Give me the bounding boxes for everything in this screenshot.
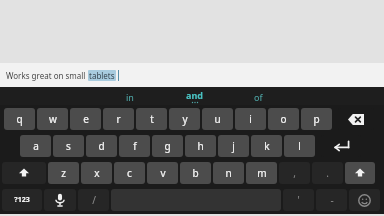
staticText: u [214, 112, 221, 126]
staticText: . [326, 166, 329, 180]
button[interactable]: a [20, 135, 51, 157]
button[interactable]: f [119, 135, 150, 157]
staticText: ?123 [14, 195, 30, 205]
staticText: / [92, 193, 96, 207]
button[interactable]: n [213, 162, 244, 184]
staticText: q [16, 112, 23, 126]
staticText: r [116, 112, 121, 126]
staticText: and [186, 89, 203, 101]
button[interactable]: l [284, 135, 315, 157]
button[interactable]: Backspace [338, 108, 374, 130]
button[interactable]: x [81, 162, 112, 184]
button[interactable]: t [136, 108, 167, 130]
staticText: k [264, 139, 270, 153]
staticText: e [83, 112, 89, 126]
button[interactable]: o [268, 108, 299, 130]
button[interactable]: h [185, 135, 216, 157]
staticText: i [249, 112, 252, 126]
button[interactable]: z [48, 162, 79, 184]
button[interactable]: j [218, 135, 249, 157]
button[interactable]: - [316, 189, 347, 211]
button[interactable]: k [251, 135, 282, 157]
button[interactable]: u [202, 108, 233, 130]
button[interactable]: of [226, 88, 290, 105]
staticText: s [66, 139, 71, 153]
staticText: in [126, 91, 134, 103]
staticText: y [182, 112, 188, 126]
staticText: ' [297, 193, 300, 207]
button[interactable]: b [180, 162, 211, 184]
button[interactable]: r [103, 108, 134, 130]
staticText: Works great on small [6, 70, 88, 81]
button[interactable]: ' [283, 189, 314, 211]
button[interactable]: Works great on small [0, 63, 384, 87]
staticText: z [61, 166, 66, 180]
button[interactable]: q [4, 108, 35, 130]
button[interactable]: Enter [321, 135, 361, 157]
button[interactable]: s [53, 135, 84, 157]
button[interactable]: Voice input [44, 189, 76, 211]
staticText: of [254, 91, 263, 103]
button[interactable]: ?123 [2, 189, 42, 211]
staticText: l [298, 139, 301, 153]
button[interactable]: . [312, 162, 343, 184]
staticText: n [225, 166, 232, 180]
staticText: x [94, 166, 100, 180]
button[interactable]: , [279, 162, 310, 184]
button[interactable]: v [147, 162, 178, 184]
staticText: p [313, 112, 320, 126]
staticText: tablets [89, 70, 115, 81]
staticText: w [49, 112, 57, 126]
staticText: - [330, 193, 334, 207]
staticText: c [127, 166, 132, 180]
staticText: a [33, 139, 39, 153]
button[interactable]: Shift [345, 162, 375, 184]
button[interactable]: and [162, 88, 226, 105]
staticText: o [280, 112, 287, 126]
button[interactable]: / [78, 189, 109, 211]
button[interactable]: p [301, 108, 332, 130]
button[interactable]: c [114, 162, 145, 184]
staticText: j [232, 139, 235, 153]
staticText: h [197, 139, 204, 153]
button[interactable]: m [246, 162, 277, 184]
staticText: b [192, 166, 199, 180]
staticText: t [150, 112, 154, 126]
staticText: d [98, 139, 105, 153]
staticText: g [164, 139, 171, 153]
button[interactable]: i [235, 108, 266, 130]
button[interactable]: d [86, 135, 117, 157]
staticText: v [160, 166, 166, 180]
button[interactable]: in [98, 88, 162, 105]
staticText: m [257, 166, 267, 180]
button[interactable]: e [70, 108, 101, 130]
button[interactable]: w [37, 108, 68, 130]
button[interactable]: y [169, 108, 200, 130]
button[interactable]: Shift [2, 162, 46, 184]
button[interactable]: Emoji [349, 189, 380, 211]
staticText: , [293, 166, 296, 180]
staticText: f [133, 139, 137, 153]
button[interactable]: g [152, 135, 183, 157]
